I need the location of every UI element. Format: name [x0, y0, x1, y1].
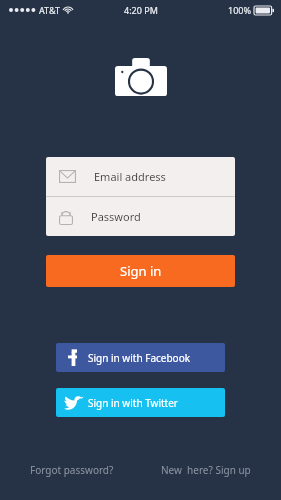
- button[interactable]: Sign in: [46, 255, 235, 287]
- staticText: Sign in: [120, 262, 162, 280]
- button[interactable]: Email address: [46, 157, 235, 196]
- button[interactable]: Forgot password?: [30, 459, 114, 481]
- staticText: 100%: [228, 4, 251, 16]
- staticText: AT&T: [39, 4, 60, 16]
- staticText: Email address: [94, 169, 166, 184]
- button[interactable]: Sign in with Facebook: [56, 343, 225, 372]
- staticText: New here? Sign up: [161, 463, 251, 477]
- button[interactable]: Sign in with Twitter: [56, 388, 225, 417]
- button[interactable]: New here? Sign up: [161, 459, 251, 481]
- staticText: Forgot password?: [30, 463, 114, 477]
- staticText: 4:20 PM: [124, 4, 158, 16]
- button[interactable]: Password: [46, 197, 235, 236]
- staticText: Sign in with Twitter: [88, 396, 178, 410]
- staticText: Password: [91, 209, 141, 224]
- staticText: Sign in with Facebook: [88, 351, 191, 365]
